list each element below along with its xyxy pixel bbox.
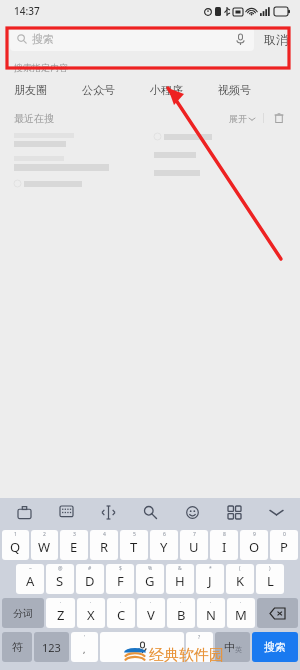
button[interactable]: @	[46, 564, 74, 594]
staticText: I	[222, 538, 227, 556]
staticText: 6	[163, 531, 166, 538]
staticText: ·	[210, 599, 212, 606]
staticText: 取消	[264, 32, 288, 47]
button[interactable]: 中	[215, 632, 250, 662]
staticText: 7	[193, 531, 196, 538]
staticText: )	[269, 565, 271, 572]
button[interactable]: ·	[197, 598, 225, 628]
staticText: O	[249, 538, 260, 556]
staticText: 搜索	[32, 32, 54, 46]
staticText: 14:37	[14, 4, 40, 18]
staticText: V	[147, 606, 155, 624]
button[interactable]: ·	[107, 598, 135, 628]
button[interactable]: %	[136, 564, 164, 594]
button[interactable]: 4	[90, 530, 118, 560]
staticText: @	[58, 565, 63, 572]
button[interactable]: 展开	[229, 113, 255, 124]
button[interactable]: 朋友圈	[14, 83, 82, 97]
button[interactable]: Emoji	[180, 500, 204, 524]
staticText: Y	[160, 538, 168, 556]
button[interactable]: Hide keyboard	[264, 500, 288, 524]
button[interactable]: Voice search	[233, 32, 247, 46]
staticText: D	[85, 572, 95, 590]
staticText: E	[70, 538, 78, 556]
button[interactable]: Keyboard layout	[54, 500, 78, 524]
button[interactable]: 公众号	[82, 83, 150, 97]
button[interactable]: $	[106, 564, 134, 594]
staticText: Z	[57, 606, 65, 624]
button[interactable]: 123	[34, 632, 69, 662]
button[interactable]: ·	[77, 598, 105, 628]
button[interactable]: 视频号	[218, 83, 286, 97]
staticText: 搜索	[264, 640, 286, 654]
button[interactable]: ·	[227, 598, 255, 628]
staticText: 2	[43, 531, 46, 538]
button[interactable]: 7	[180, 530, 208, 560]
button[interactable]: 5	[120, 530, 148, 560]
button[interactable]: (	[226, 564, 254, 594]
button[interactable]: Voice input	[100, 632, 184, 662]
staticText: 0	[283, 531, 286, 538]
button[interactable]: More	[222, 500, 246, 524]
button[interactable]: #	[76, 564, 104, 594]
staticText: 分词	[13, 607, 33, 620]
staticText: #	[88, 565, 92, 572]
staticText: ,	[83, 643, 86, 655]
staticText: ~	[29, 565, 32, 572]
staticText: ·	[150, 599, 152, 606]
button[interactable]: 小程序	[150, 83, 218, 97]
staticText: W	[38, 538, 51, 556]
button[interactable]: ·	[137, 598, 165, 628]
staticText: B	[177, 606, 186, 624]
staticText: '	[84, 634, 86, 641]
button[interactable]: 1	[2, 530, 29, 560]
button[interactable]: ~	[16, 564, 44, 594]
staticText: C	[117, 606, 126, 624]
button[interactable]: *	[196, 564, 224, 594]
button[interactable]: ·	[46, 598, 75, 628]
staticText: 公众号	[82, 83, 115, 97]
button[interactable]: 2	[31, 530, 58, 560]
staticText: P	[280, 538, 288, 556]
button[interactable]: Clipboard	[12, 500, 36, 524]
button[interactable]: Clear history	[272, 111, 286, 125]
staticText: 3	[73, 531, 76, 538]
staticText: ·	[120, 599, 122, 606]
staticText: 朋友圈	[14, 83, 47, 97]
button[interactable]: 取消	[262, 28, 290, 51]
staticText: 视频号	[218, 83, 251, 97]
button[interactable]: 6	[150, 530, 178, 560]
button[interactable]: Text cursor	[96, 500, 120, 524]
staticText: ·	[90, 599, 92, 606]
button[interactable]: ?	[186, 632, 213, 662]
staticText: ·	[60, 599, 62, 606]
staticText: 搜索指定内容	[14, 62, 68, 73]
staticText: G	[145, 572, 155, 590]
button[interactable]: 9	[240, 530, 268, 560]
staticText: 展开	[229, 113, 247, 124]
staticText: 小程序	[150, 83, 183, 97]
button[interactable]: )	[256, 564, 284, 594]
staticText: (	[239, 565, 241, 572]
staticText: H	[175, 572, 185, 590]
staticText: %	[148, 565, 153, 572]
staticText: ?	[198, 634, 201, 641]
staticText: $	[119, 565, 122, 572]
button[interactable]: 3	[60, 530, 88, 560]
staticText: M	[235, 606, 247, 624]
button[interactable]: Search	[138, 500, 162, 524]
button[interactable]: 0	[270, 530, 298, 560]
button[interactable]: Backspace	[257, 598, 298, 628]
button[interactable]: 搜索	[10, 27, 254, 51]
button[interactable]: 搜索	[252, 632, 298, 662]
button[interactable]: 符	[2, 632, 32, 662]
button[interactable]: &	[166, 564, 194, 594]
staticText: R	[100, 538, 109, 556]
button[interactable]: 分词	[2, 598, 44, 628]
staticText: 经典软件园	[149, 646, 224, 665]
button[interactable]: 8	[210, 530, 238, 560]
button[interactable]: '	[71, 632, 98, 662]
staticText: 9	[253, 531, 256, 538]
staticText: 123	[42, 640, 61, 655]
button[interactable]: ·	[167, 598, 195, 628]
